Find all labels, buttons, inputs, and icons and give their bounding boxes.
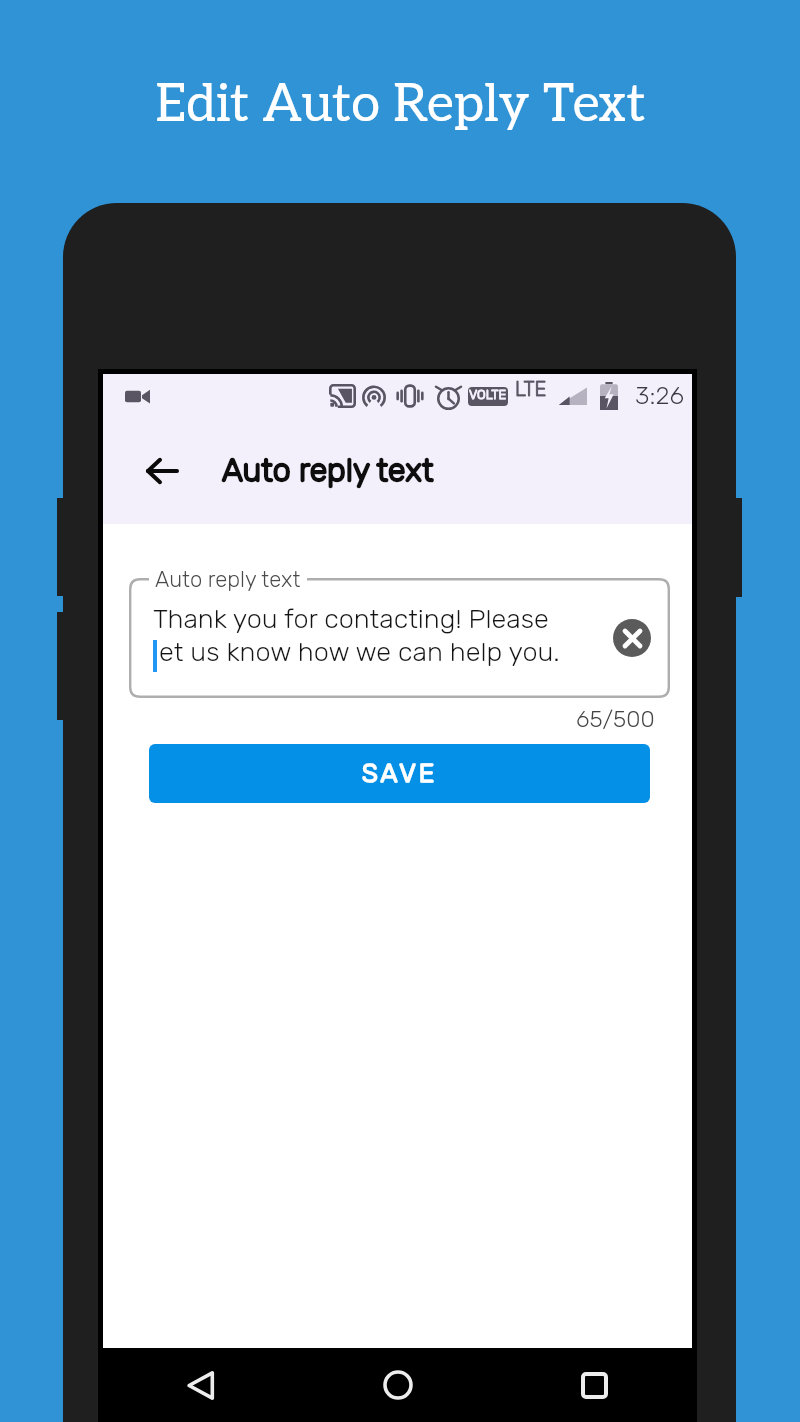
staticText: Auto reply text xyxy=(155,566,301,592)
staticText: Auto reply text xyxy=(222,451,434,489)
staticText: LTE xyxy=(515,377,547,401)
button[interactable]: Recent apps xyxy=(496,1348,692,1422)
button[interactable]: SAVE xyxy=(149,744,650,803)
button[interactable]: Home xyxy=(300,1348,496,1422)
staticText: LTE xyxy=(515,377,547,401)
button[interactable]: Back xyxy=(103,1348,300,1422)
button[interactable]: Clear text xyxy=(613,619,651,657)
staticText: Thank you for contacting! Please let us … xyxy=(153,603,573,668)
staticText: 3:26 xyxy=(635,381,684,411)
staticText: Edit Auto Reply Text xyxy=(155,74,646,136)
button[interactable]: Thank you for contacting! Please let us … xyxy=(129,578,670,698)
staticText: SAVE xyxy=(362,758,438,789)
staticText: Auto reply text xyxy=(222,451,434,489)
staticText: VOLTE xyxy=(469,387,507,402)
button[interactable]: Navigate up xyxy=(135,444,189,498)
staticText: SAVE xyxy=(362,758,438,789)
staticText: 65/500 xyxy=(576,705,655,732)
staticText: VOLTE xyxy=(469,387,507,402)
